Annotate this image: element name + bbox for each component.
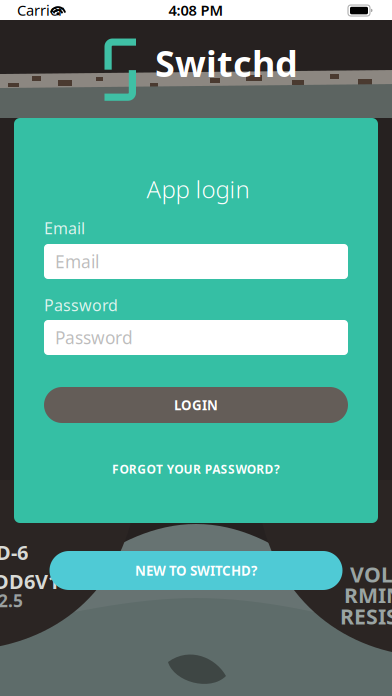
button[interactable]: FORGOT YOUR PASSWORD? [44, 460, 348, 478]
staticText: RESISTO [340, 602, 392, 630]
staticText: Email [44, 217, 85, 239]
button[interactable]: NEW TO SWITCHD? [49, 551, 342, 590]
staticText: Password [44, 294, 118, 316]
staticText: Carrier [17, 0, 64, 20]
staticText: D-6 [0, 539, 28, 566]
staticText: Switchd [155, 39, 298, 87]
staticText: DD6V1Y [0, 568, 72, 595]
staticText: 2.5 [0, 589, 23, 612]
staticText: App login [146, 173, 249, 205]
staticText: 4:08 PM [168, 0, 223, 20]
staticText: Password [55, 326, 133, 349]
staticText: VOLTS [350, 560, 392, 588]
staticText: RMINAL [344, 581, 392, 609]
button[interactable]: LOGIN [44, 387, 348, 423]
staticText: LOGIN [174, 396, 218, 414]
staticText: FORGOT YOUR PASSWORD? [112, 461, 280, 477]
staticText: Email [55, 250, 99, 273]
staticText: NEW TO SWITCHD? [135, 562, 257, 579]
